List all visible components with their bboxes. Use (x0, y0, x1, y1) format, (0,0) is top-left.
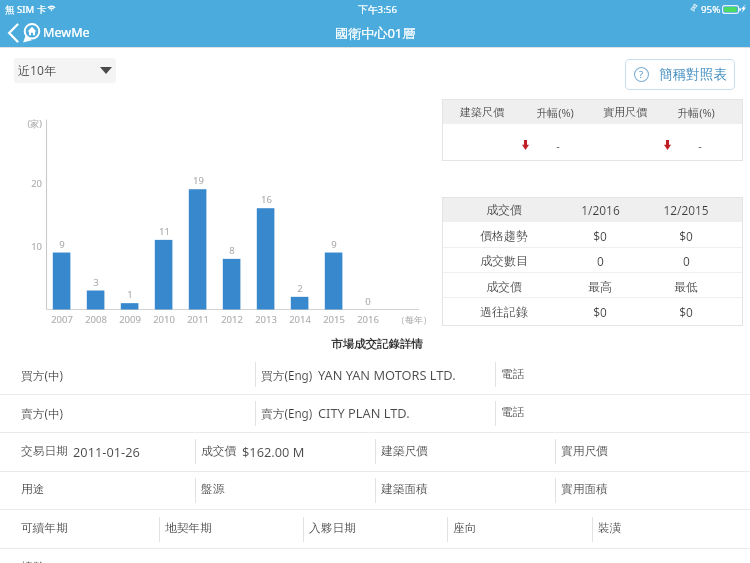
staticText: 賣方(Eng) (261, 405, 313, 421)
staticText: ? (639, 68, 644, 81)
staticText: 賣方(中) (21, 405, 64, 421)
staticText: 16 (261, 193, 272, 206)
staticText: 最高 (588, 280, 612, 295)
button[interactable]: 樓齡 (0, 548, 750, 563)
staticText: 建築尺價 (381, 444, 428, 459)
staticText: 下午3:56 (358, 3, 398, 16)
staticText: 9 (59, 238, 65, 251)
staticText: 用途 (21, 482, 45, 497)
button[interactable]: 買方(Eng) (255, 355, 496, 394)
staticText: - (556, 138, 560, 153)
button[interactable]: 電話 (495, 393, 750, 432)
staticText: 0 (365, 295, 371, 308)
button[interactable]: 盤源 (195, 470, 375, 509)
button[interactable]: 建築尺價 (375, 432, 556, 471)
staticText: 實用尺價 (603, 105, 647, 119)
staticText: 9 (331, 238, 337, 251)
staticText: 2008 (85, 313, 107, 326)
staticText: 成交數目 (480, 254, 528, 269)
staticText: CITY PLAN LTD. (318, 404, 410, 421)
staticText: 2012 (221, 313, 243, 326)
staticText: 2007 (51, 313, 73, 326)
staticText: 裝潢 (598, 521, 622, 536)
staticText: 無 SIM 卡 (5, 3, 47, 16)
staticText: 2015 (323, 313, 345, 326)
staticText: 成交價 (486, 203, 522, 218)
staticText: 入夥日期 (309, 521, 356, 536)
staticText: YAN YAN MOTORS LTD. (318, 366, 456, 383)
staticText: 買方(Eng) (261, 367, 313, 383)
button[interactable]: ? (625, 59, 735, 90)
staticText: 實用面積 (561, 482, 608, 497)
staticText: 2010 (153, 313, 175, 326)
staticText: 2014 (289, 313, 311, 326)
staticText: 座向 (453, 521, 477, 536)
staticText: $0 (679, 304, 693, 320)
staticText: 0 (597, 253, 604, 269)
button[interactable]: 座向 (447, 509, 591, 548)
staticText: 電話 (501, 405, 525, 420)
button[interactable]: Back (4, 18, 96, 47)
staticText: 可續年期 (21, 521, 68, 536)
staticText: 20 (31, 177, 42, 190)
staticText: 樓齡 (21, 560, 45, 563)
staticText: 1 (127, 288, 133, 301)
staticText: 成交價 (486, 280, 522, 295)
staticText: $0 (593, 304, 607, 320)
staticText: 國衛中心01層 (335, 24, 416, 42)
staticText: 交易日期 (21, 444, 68, 459)
staticText: 升幅(%) (536, 105, 574, 120)
button[interactable]: 可續年期 (0, 509, 159, 548)
staticText: 2009 (119, 313, 141, 326)
staticText: 盤源 (201, 482, 225, 497)
button[interactable]: 地契年期 (159, 509, 303, 548)
button[interactable]: 實用尺價 (555, 432, 750, 471)
staticText: 12/2015 (663, 202, 709, 218)
button[interactable]: 成交價 (195, 432, 375, 471)
staticText: 市場成交記錄詳情 (331, 337, 423, 351)
staticText: $162.00 M (242, 443, 305, 460)
staticText: 過往記錄 (480, 305, 528, 320)
staticText: 近10年 (18, 62, 57, 79)
button[interactable]: 賣方(中) (0, 393, 255, 432)
staticText: - (698, 138, 702, 153)
button[interactable]: 買方(中) (0, 355, 255, 394)
staticText: 電話 (501, 367, 525, 382)
staticText: 10 (31, 240, 42, 253)
staticText: 價格趨勢 (480, 229, 528, 244)
staticText: 成交價 (201, 444, 237, 459)
button[interactable]: 交易日期 (0, 432, 195, 471)
staticText: （每年） (396, 314, 432, 325)
staticText: 2016 (357, 313, 379, 326)
button[interactable]: 實用面積 (555, 470, 750, 509)
staticText: 11 (159, 225, 170, 238)
staticText: (家) (27, 117, 42, 129)
staticText: 買方(中) (21, 367, 64, 383)
staticText: 地契年期 (165, 521, 212, 536)
staticText: 95% (701, 3, 721, 16)
staticText: 建築面積 (381, 482, 428, 497)
staticText: 19 (193, 174, 204, 187)
staticText: 升幅(%) (677, 105, 715, 120)
staticText: 實用尺價 (561, 444, 608, 459)
staticText: 2013 (255, 313, 277, 326)
staticText: 0 (683, 253, 690, 269)
button[interactable]: 入夥日期 (303, 509, 448, 548)
button[interactable]: 電話 (495, 355, 750, 394)
button[interactable]: 賣方(Eng) (255, 393, 496, 432)
button[interactable]: 近10年 (14, 58, 116, 83)
button[interactable]: 裝潢 (592, 509, 750, 548)
staticText: 2011-01-26 (73, 443, 140, 460)
staticText: $0 (679, 228, 693, 244)
other: Back (8, 24, 18, 42)
staticText: 1/2016 (581, 202, 620, 218)
staticText: MewMe (43, 24, 90, 41)
staticText: $0 (593, 228, 607, 244)
staticText: 簡稱對照表 (659, 66, 727, 83)
staticText: 建築尺價 (460, 105, 504, 119)
button[interactable]: 建築面積 (375, 470, 556, 509)
button[interactable]: 用途 (0, 470, 195, 509)
staticText: 8 (229, 244, 235, 257)
staticText: 3 (93, 276, 99, 289)
staticText: 2011 (187, 313, 209, 326)
